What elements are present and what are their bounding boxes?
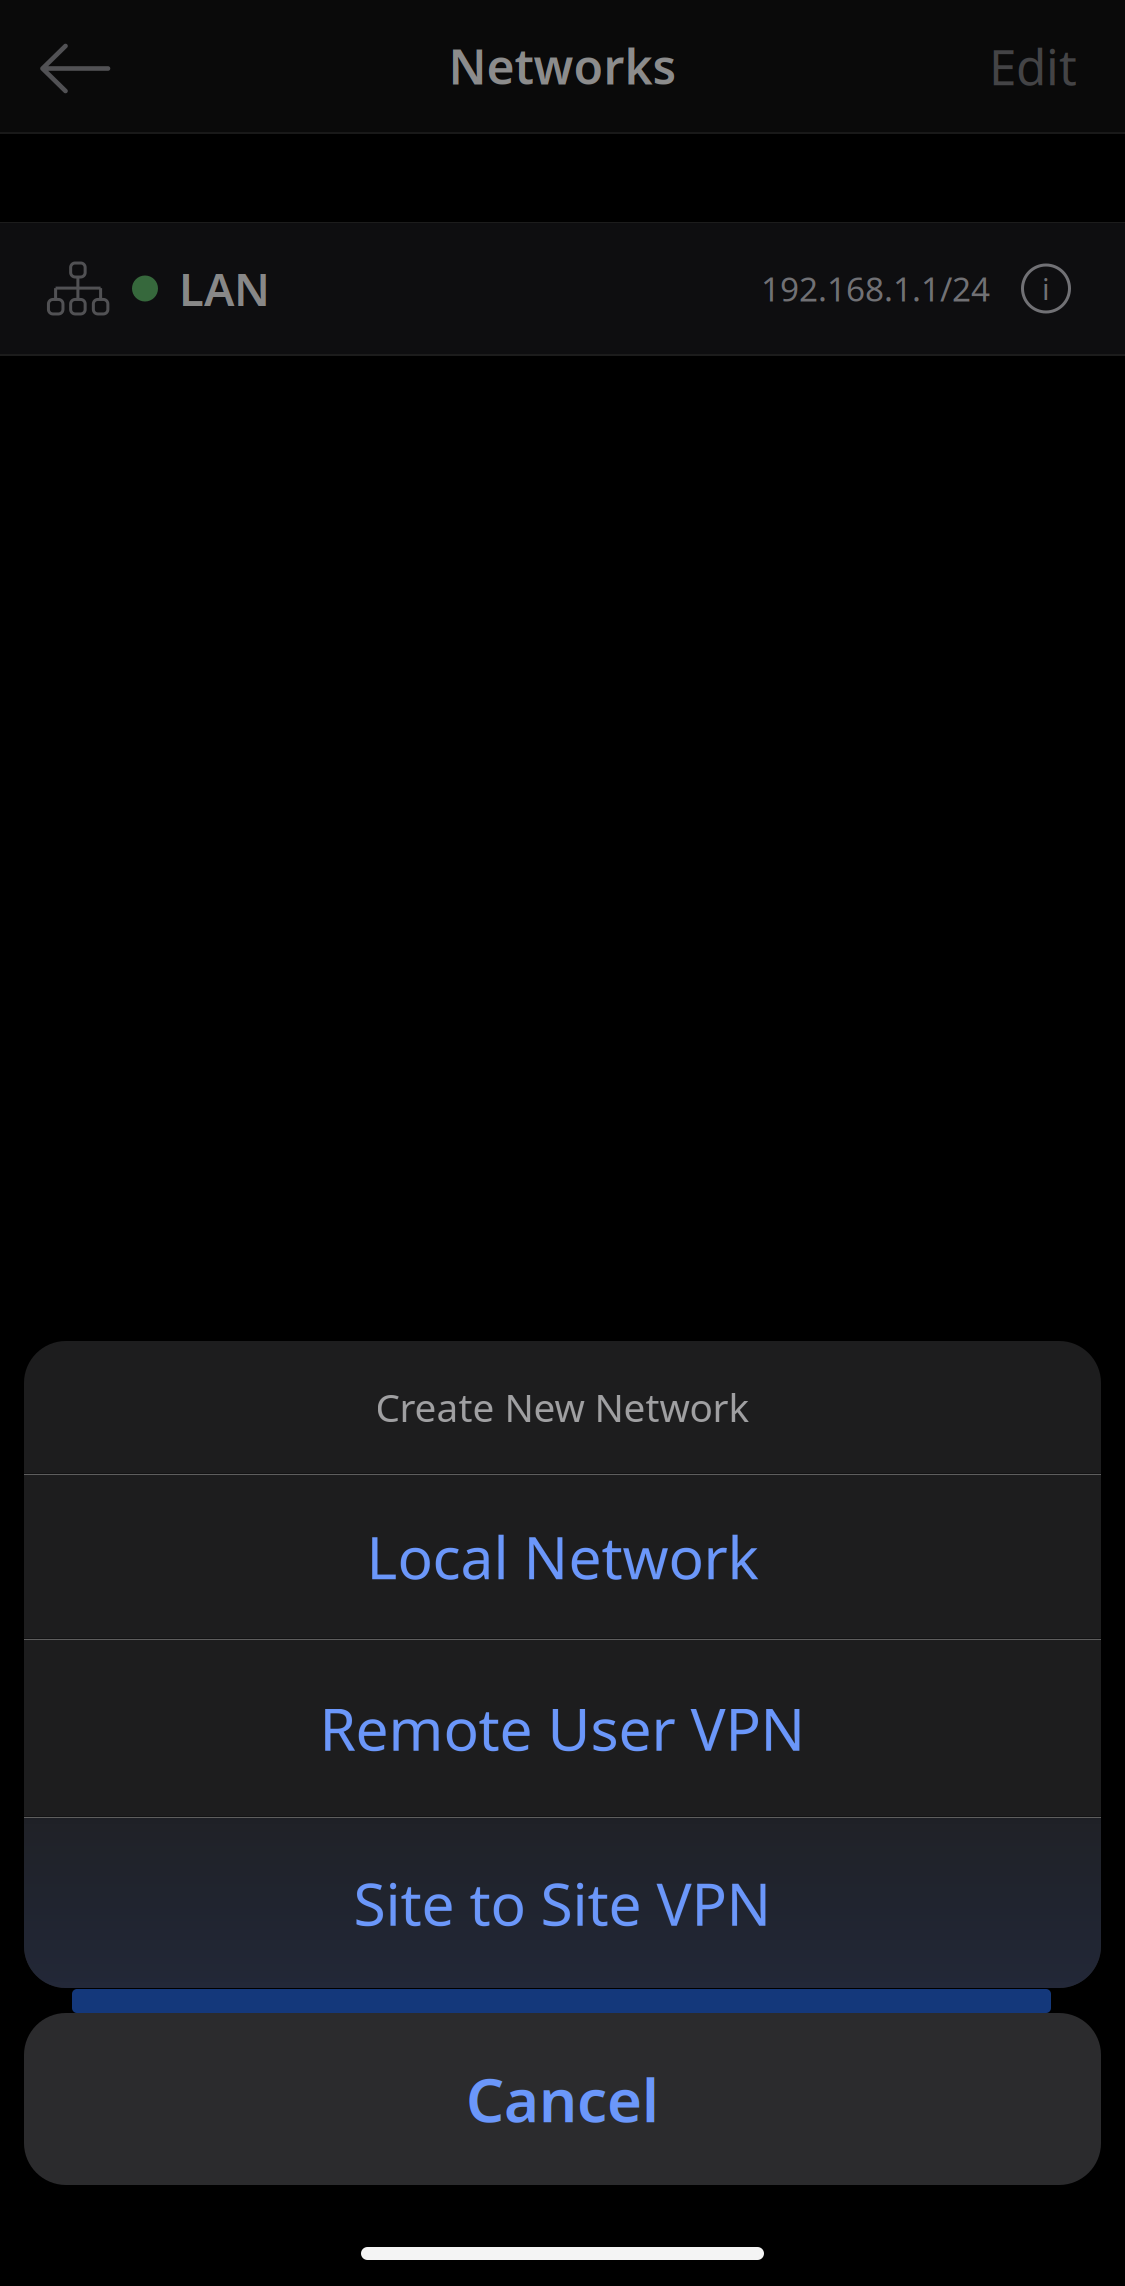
button[interactable]: Site to Site VPN	[24, 1818, 1101, 1988]
staticText: 192.168.1.1/24	[761, 266, 990, 311]
staticText: Edit	[989, 33, 1077, 99]
staticText: Site to Site VPN	[353, 1864, 771, 1942]
button[interactable]: Local Network	[24, 1475, 1101, 1638]
staticText: Cancel	[466, 2059, 659, 2139]
button[interactable]: LAN	[0, 222, 1125, 354]
button[interactable]: Remote User VPN	[24, 1640, 1101, 1816]
button[interactable]: Back	[0, 0, 150, 132]
button[interactable]: Cancel	[24, 2013, 1101, 2185]
staticText: i	[1042, 269, 1050, 308]
staticText: LAN	[179, 258, 270, 319]
staticText: Remote User VPN	[319, 1689, 805, 1767]
staticText: Local Network	[366, 1517, 758, 1595]
staticText: Networks	[448, 34, 676, 98]
staticText: Create New Network	[375, 1381, 749, 1433]
button[interactable]: Edit	[941, 0, 1125, 132]
